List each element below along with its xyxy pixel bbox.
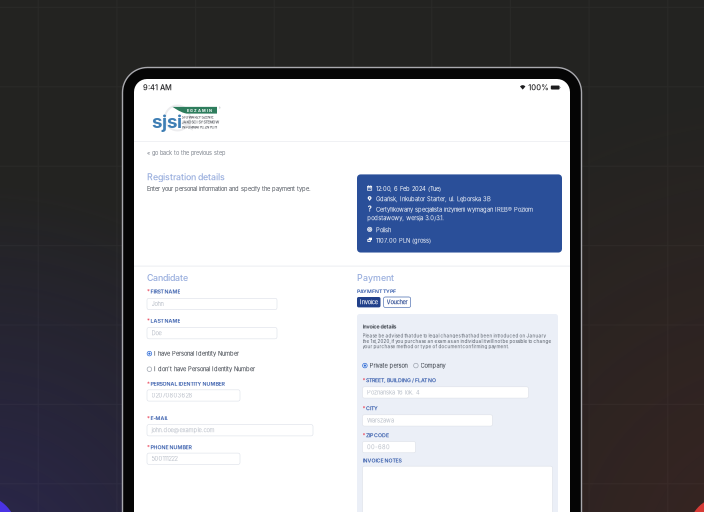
staticText: « go back to the previous step xyxy=(147,150,225,156)
staticText: INFORMATYCZNYCH xyxy=(181,125,217,129)
button[interactable]: « go back to the previous step xyxy=(147,150,225,156)
staticText: * xyxy=(147,381,150,388)
staticText: Registration details xyxy=(147,172,225,182)
staticText: LAST NAME xyxy=(150,318,180,324)
staticText: * xyxy=(362,432,365,439)
staticText: 1107.00 PLN (gross) xyxy=(376,237,431,244)
staticText: * xyxy=(147,318,150,325)
staticText: PHONE NUMBER xyxy=(150,444,191,450)
staticText: Voucher xyxy=(387,299,408,306)
button[interactable]: Invoice xyxy=(357,297,380,307)
staticText: Invoice xyxy=(360,299,378,306)
staticText: Company xyxy=(420,362,445,369)
staticText: Invoice details xyxy=(362,323,396,330)
staticText: I don't have Personal Identity Number xyxy=(154,366,255,373)
staticText: Gdańsk, Inkubator Starter, ul. Lęborska … xyxy=(376,196,491,203)
staticText: ? xyxy=(368,204,372,213)
staticText: E G Z A M I N xyxy=(187,108,212,113)
staticText: sjsi xyxy=(152,110,182,133)
staticText: 9:41 AM xyxy=(143,83,172,92)
staticText: INVOICE NOTES xyxy=(362,457,401,464)
button[interactable]: I have Personal Identity Number xyxy=(147,350,239,357)
staticText: ZIP CODE xyxy=(366,432,389,439)
staticText: Certyfikowany specjalista inżynierii wym… xyxy=(376,206,533,213)
staticText: john.doe@example.com xyxy=(151,427,214,434)
button[interactable]: Voucher xyxy=(384,297,411,307)
staticText: JAKOŚCI SYSTEMÓW xyxy=(181,120,219,124)
staticText: I have Personal Identity Number xyxy=(154,350,239,357)
staticText: Poznańska 16 lok. 4 xyxy=(367,389,420,396)
staticText: STOWARZYSZENIE xyxy=(181,115,213,119)
staticText: E-MAIL xyxy=(150,415,168,422)
staticText: Polish xyxy=(376,227,391,234)
staticText: FIRST NAME xyxy=(150,288,180,295)
staticText: Payment xyxy=(357,272,394,283)
staticText: STREET, BUILDING / FLAT NO xyxy=(366,377,436,384)
staticText: Enter your personal information and spec… xyxy=(147,185,311,192)
staticText: Candidate xyxy=(147,272,188,283)
staticText: * xyxy=(147,288,150,295)
button[interactable]: Private person xyxy=(362,362,407,369)
button[interactable]: Company xyxy=(413,362,445,369)
staticText: PERSONAL IDENTITY NUMBER xyxy=(150,381,224,387)
staticText: 500111222 xyxy=(151,455,177,462)
staticText: podstawowy, wersja 3.0/3.1. xyxy=(367,215,444,222)
staticText: 02070803628 xyxy=(151,392,192,399)
staticText: 100% xyxy=(528,83,548,92)
staticText: Warszawa xyxy=(367,417,394,424)
staticText: * xyxy=(362,377,365,384)
staticText: ® xyxy=(218,107,220,110)
staticText: Please be advised that due to legal chan… xyxy=(362,333,551,349)
staticText: Doe xyxy=(151,330,161,337)
staticText: * xyxy=(362,405,365,412)
staticText: PAYMENT TYPE xyxy=(357,288,396,295)
staticText: John xyxy=(151,300,163,307)
staticText: * xyxy=(147,444,150,451)
staticText: * xyxy=(147,415,150,422)
staticText: 12:00, 6 Feb 2024 (Tue) xyxy=(376,185,441,192)
staticText: CITY xyxy=(366,405,378,412)
staticText: 00-680 xyxy=(367,444,390,451)
staticText: Private person xyxy=(369,362,407,369)
button[interactable]: I don't have Personal Identity Number xyxy=(147,366,255,372)
